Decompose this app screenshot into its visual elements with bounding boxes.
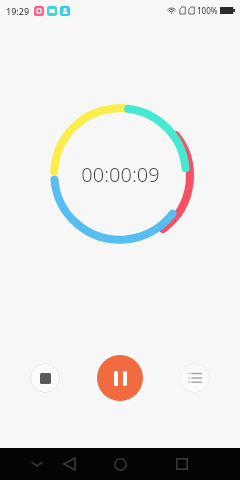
button[interactable]: Hide navigation bar — [26, 453, 48, 475]
button[interactable]: Home — [95, 448, 145, 480]
staticText: 00:00:09 — [81, 161, 160, 188]
button[interactable]: Back — [44, 448, 94, 480]
button[interactable]: Pause — [97, 355, 143, 401]
staticText: 100% — [197, 5, 218, 16]
button[interactable]: Laps — [180, 363, 210, 393]
staticText: 19:29 — [6, 5, 30, 17]
button[interactable]: Stop — [30, 363, 60, 393]
button[interactable]: Recent apps — [157, 448, 207, 480]
